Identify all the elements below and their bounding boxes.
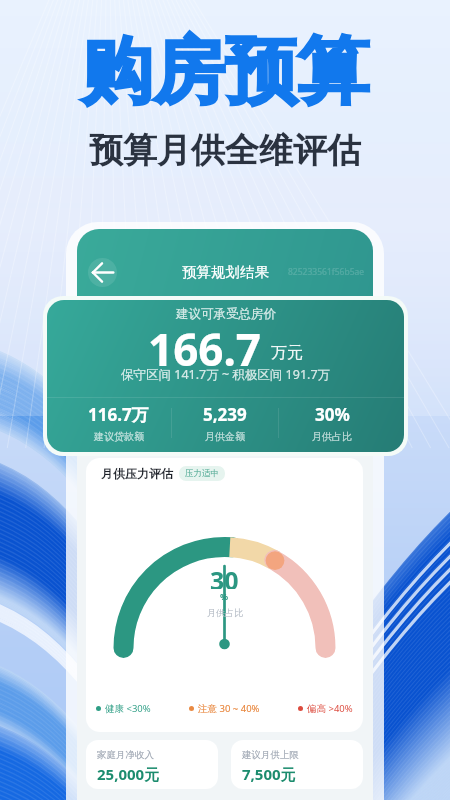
staticText: 万元	[271, 343, 303, 363]
staticText: 30%	[315, 403, 350, 426]
staticText: 压力适中	[185, 468, 219, 479]
button[interactable]: 注意 30 ~ 40%	[189, 702, 260, 715]
staticText: 注意 30 ~ 40%	[198, 702, 260, 715]
staticText: 月供占比	[312, 430, 352, 443]
staticText: 购房预算	[81, 27, 369, 118]
staticText: 7,500元	[242, 764, 296, 784]
button[interactable]: 健康 <30%	[96, 702, 151, 715]
staticText: 825233561f56b5ae	[288, 266, 365, 278]
staticText: 健康 <30%	[105, 702, 151, 715]
staticText: 月供压力评估	[101, 466, 173, 481]
staticText: 月供金额	[205, 430, 245, 443]
staticText: 家庭月净收入	[97, 749, 154, 761]
button[interactable]: 116.7万	[66, 403, 171, 443]
button[interactable]: 偏高 >40%	[298, 702, 353, 715]
staticText: 建议月供上限	[242, 749, 299, 761]
staticText: 保守区间 141.7万 ~ 积极区间 191.7万	[121, 366, 331, 383]
staticText: 建议贷款额	[94, 430, 144, 443]
staticText: 30	[210, 563, 239, 589]
staticText: 偏高 >40%	[307, 702, 353, 715]
staticText: 预算规划结果	[182, 263, 269, 281]
button[interactable]: 家庭月净收入	[86, 740, 218, 789]
staticText: 116.7万	[88, 403, 149, 426]
staticText: 5,239	[203, 403, 247, 426]
button[interactable]: 5,239	[172, 403, 278, 443]
button[interactable]: 建议月供上限	[231, 740, 363, 789]
staticText: 预算月供全维评估	[89, 129, 361, 172]
staticText: 建议可承受总房价	[176, 306, 276, 322]
staticText: %	[220, 590, 229, 602]
button[interactable]: 30%	[279, 403, 385, 443]
staticText: 25,000元	[97, 764, 160, 784]
button[interactable]: 返回	[88, 258, 117, 287]
staticText: 月供占比	[207, 607, 243, 618]
staticText: 166.7	[148, 319, 262, 367]
